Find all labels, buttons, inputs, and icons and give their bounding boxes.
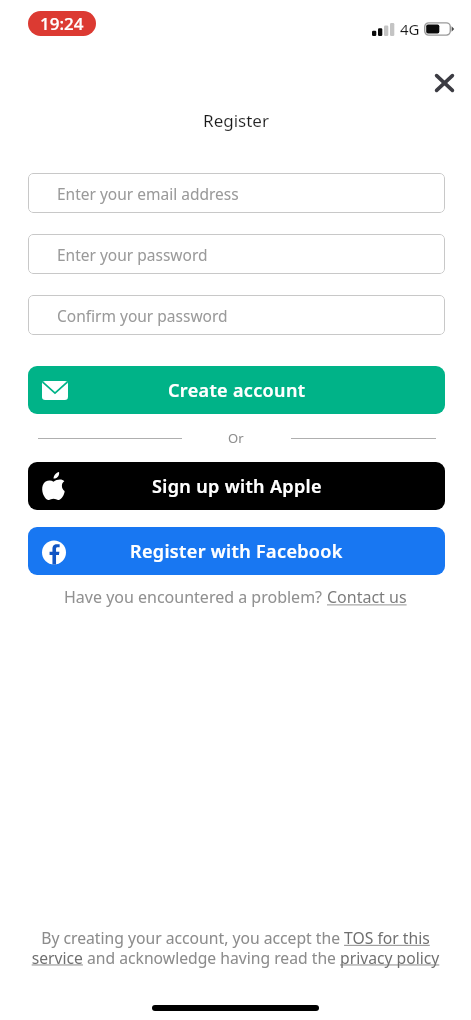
button[interactable]: Contact us bbox=[327, 586, 407, 608]
staticText: Have you encountered a problem? bbox=[64, 586, 327, 608]
staticText: Enter your email address bbox=[57, 183, 239, 204]
button[interactable]: Sign up with Apple bbox=[28, 462, 445, 510]
staticText: Enter your password bbox=[57, 244, 208, 265]
button[interactable]: Enter your email address bbox=[28, 173, 445, 213]
staticText: Confirm your password bbox=[57, 305, 228, 326]
button[interactable]: Confirm your password bbox=[28, 295, 445, 335]
button[interactable]: Register with Facebook bbox=[28, 527, 445, 575]
staticText: Or bbox=[228, 429, 244, 447]
staticText: 4G bbox=[400, 19, 420, 39]
staticText: 19:24 bbox=[40, 12, 84, 35]
staticText: Create account bbox=[168, 378, 306, 403]
staticText: Sign up with Apple bbox=[152, 474, 322, 499]
button[interactable]: Enter your password bbox=[28, 234, 445, 274]
button[interactable]: Create account bbox=[28, 366, 445, 414]
staticText: By creating your account, you accept the… bbox=[16, 927, 455, 968]
staticText: Register with Facebook bbox=[130, 539, 343, 564]
button[interactable]: Close bbox=[425, 64, 463, 102]
staticText: Register bbox=[203, 109, 269, 132]
